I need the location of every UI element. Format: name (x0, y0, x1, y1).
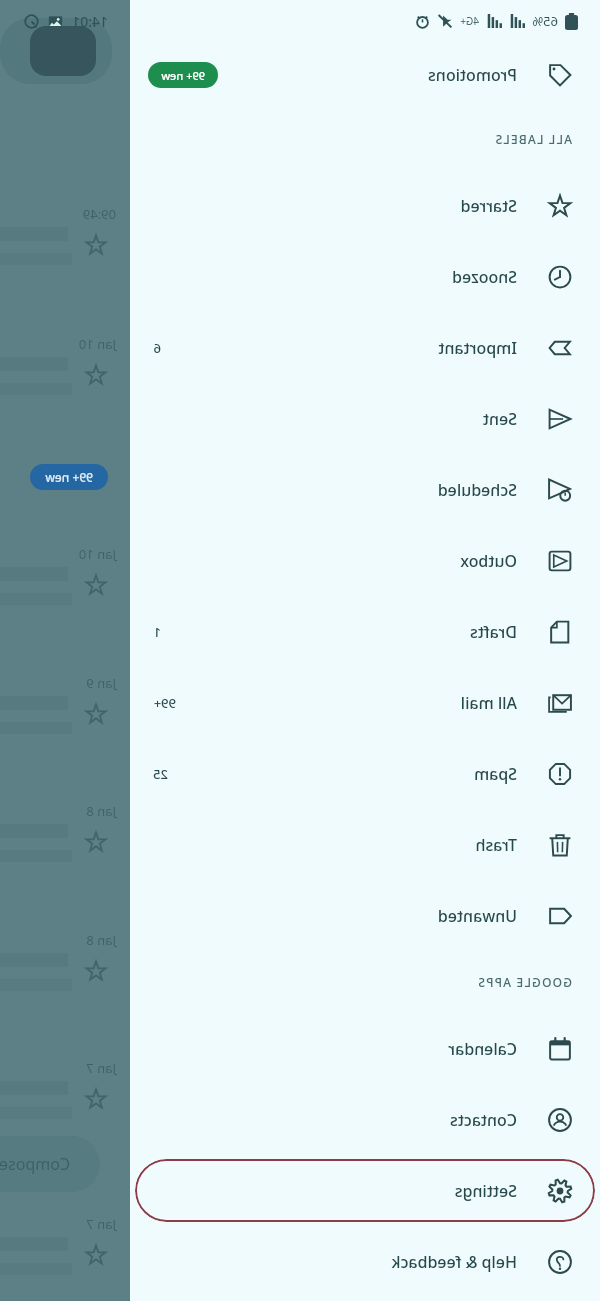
button[interactable]: All mail (135, 671, 595, 734)
button[interactable]: Spam (135, 742, 595, 805)
button[interactable]: Important (135, 316, 595, 379)
staticText: 25 (153, 765, 168, 783)
staticText: Snoozed (452, 266, 517, 288)
staticText: Jan 7 (86, 1215, 116, 1233)
button[interactable]: Snoozed (135, 245, 595, 308)
button[interactable]: Promotions (130, 42, 600, 108)
staticText: Trash (475, 834, 517, 856)
staticText: Jan 10 (78, 335, 116, 353)
button[interactable]: Calendar (135, 1017, 595, 1080)
staticText: 1 (153, 623, 161, 641)
staticText: 6 (153, 339, 161, 357)
staticText: Jan 9 (86, 674, 116, 692)
button[interactable]: Starred (135, 174, 595, 237)
staticText: Starred (460, 195, 517, 217)
button[interactable]: Settings (135, 1159, 595, 1222)
staticText: Help & feedback (391, 1251, 517, 1273)
staticText: ALL LABELS (494, 131, 572, 147)
staticText: Scheduled (437, 479, 517, 501)
button[interactable]: Contacts (135, 1088, 595, 1151)
staticText: All mail (460, 692, 517, 714)
button[interactable]: Drafts (135, 600, 595, 663)
staticText: Settings (454, 1180, 517, 1202)
staticText: Important (438, 337, 517, 359)
staticText: Jan 7 (86, 1059, 116, 1077)
staticText: Unwanted (437, 905, 517, 927)
staticText: Jan 10 (78, 545, 116, 563)
button[interactable]: Unwanted (135, 884, 595, 947)
button[interactable]: Scheduled (135, 458, 595, 521)
staticText: 99+ (153, 694, 176, 712)
staticText: Contacts (449, 1109, 517, 1131)
button[interactable]: Outbox (135, 529, 595, 592)
staticText: Jan 8 (86, 931, 116, 949)
staticText: Sent (482, 408, 517, 430)
staticText: Jan 8 (86, 802, 116, 820)
button[interactable]: Help & feedback (135, 1230, 595, 1293)
staticText: Spam (473, 763, 517, 785)
staticText: Outbox (460, 550, 517, 572)
staticText: Calendar (448, 1038, 517, 1060)
staticText: 99+ new (161, 68, 205, 83)
staticText: 65% (532, 12, 558, 30)
staticText: GOOGLE APPS (477, 974, 572, 990)
staticText: 4G+ (460, 14, 479, 28)
button[interactable]: Trash (135, 813, 595, 876)
button[interactable]: Sent (135, 387, 595, 450)
staticText: Promotions (428, 64, 517, 86)
staticText: 14:01 (72, 12, 108, 31)
staticText: Drafts (470, 621, 517, 643)
staticText: Compose (0, 1153, 70, 1175)
staticText: 99+ new (45, 469, 93, 485)
staticText: 09:49 (82, 205, 116, 223)
